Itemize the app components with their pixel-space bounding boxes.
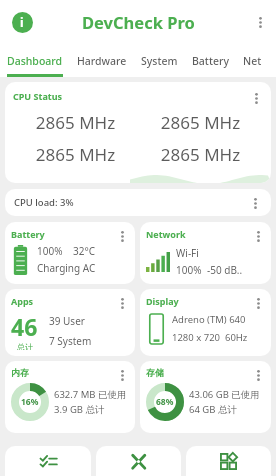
staticText: 43.06 GB 已使用: [189, 388, 260, 401]
staticText: 2865 MHz: [13, 143, 138, 166]
staticText: 64 GB 总计: [189, 403, 237, 416]
staticText: Display: [146, 295, 179, 307]
staticText: 存储: [146, 367, 164, 378]
staticText: 68%: [156, 396, 174, 408]
button[interactable]: Battery options: [115, 228, 129, 244]
staticText: Dashboard: [7, 54, 63, 68]
staticText: 16%: [21, 396, 39, 408]
button[interactable]: Tools: [96, 446, 181, 476]
button[interactable]: CPU Status options: [249, 90, 263, 106]
button[interactable]: Display options: [251, 295, 265, 311]
button[interactable]: 存储: [140, 361, 271, 433]
staticText: Battery: [192, 54, 229, 68]
staticText: 2865 MHz: [13, 111, 138, 134]
button[interactable]: Widgets: [186, 446, 271, 476]
staticText: 2865 MHz: [138, 111, 263, 134]
staticText: 7 System: [49, 334, 92, 348]
staticText: CPU load: 3%: [14, 196, 74, 209]
staticText: Battery: [11, 228, 45, 240]
staticText: 3.9 GB 总计: [54, 403, 105, 416]
staticText: 内存: [11, 367, 29, 378]
staticText: DevCheck Pro: [82, 11, 195, 33]
button[interactable]: Battery: [192, 44, 229, 77]
staticText: 46: [11, 311, 38, 342]
button[interactable]: Battery: [5, 222, 135, 284]
staticText: CPU Status: [13, 90, 63, 102]
staticText: 1280 x 720 60Hz: [172, 331, 248, 344]
button[interactable]: CPU Status: [5, 82, 271, 183]
staticText: 632.7 MB 已使用: [54, 388, 127, 401]
staticText: Apps: [11, 295, 34, 307]
button[interactable]: About: [9, 9, 35, 35]
button[interactable]: Net: [243, 44, 262, 77]
staticText: Net: [243, 54, 262, 68]
button[interactable]: 内存 options: [115, 367, 129, 383]
staticText: 32°C: [73, 244, 96, 258]
staticText: System: [141, 54, 178, 68]
staticText: Network: [146, 228, 186, 240]
button[interactable]: Apps options: [115, 295, 129, 311]
button[interactable]: Network: [140, 222, 271, 284]
staticText: Adreno (TM) 640: [172, 313, 246, 326]
staticText: Charging AC: [37, 261, 96, 275]
button[interactable]: 内存: [5, 361, 135, 433]
staticText: 100%: [37, 244, 63, 258]
button[interactable]: CPU load: 3%: [5, 189, 271, 216]
staticText: Wi-Fi: [176, 246, 199, 260]
staticText: 39 User: [49, 314, 85, 328]
button[interactable]: Checklist: [5, 446, 91, 476]
button[interactable]: Dashboard: [7, 44, 63, 77]
button[interactable]: Apps: [5, 289, 135, 356]
button[interactable]: More options: [253, 14, 267, 30]
staticText: Hardware: [77, 54, 127, 68]
staticText: 2865 MHz: [138, 143, 263, 166]
button[interactable]: CPU load options: [248, 195, 262, 211]
staticText: 100%: [176, 263, 202, 277]
button[interactable]: Network options: [251, 228, 265, 244]
button[interactable]: 存储 options: [251, 367, 265, 383]
button[interactable]: Hardware: [77, 44, 127, 77]
button[interactable]: Display: [140, 289, 271, 356]
staticText: 总计: [17, 342, 33, 350]
staticText: i: [20, 14, 24, 30]
button[interactable]: System: [141, 44, 178, 77]
staticText: -50 dB..: [207, 263, 243, 277]
